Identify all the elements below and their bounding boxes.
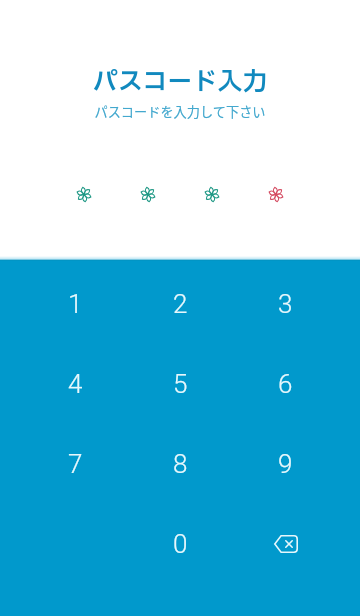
button[interactable]: 5	[128, 344, 232, 424]
button[interactable]: 9	[233, 424, 337, 504]
staticText: 5	[173, 369, 188, 399]
button[interactable]: 6	[233, 344, 337, 424]
staticText: 8	[173, 449, 188, 479]
staticText: 0	[173, 529, 188, 559]
button[interactable]: 3	[233, 264, 337, 344]
staticText: 3	[278, 289, 293, 319]
button[interactable]: Delete last digit	[233, 504, 337, 584]
staticText: 4	[68, 369, 83, 399]
button[interactable]: 2	[128, 264, 232, 344]
staticText: パスコード入力	[0, 64, 360, 101]
button[interactable]: 4	[23, 344, 127, 424]
button[interactable]: 0	[128, 504, 232, 584]
button[interactable]: 8	[128, 424, 232, 504]
button[interactable]: 1	[23, 264, 127, 344]
button[interactable]: 7	[23, 424, 127, 504]
staticText: 6	[278, 369, 293, 399]
staticText: 1	[68, 289, 83, 319]
staticText: パスコードを入力して下さい	[0, 102, 360, 121]
staticText: 7	[68, 449, 83, 479]
staticText: 9	[278, 449, 293, 479]
staticText: 2	[173, 289, 188, 319]
